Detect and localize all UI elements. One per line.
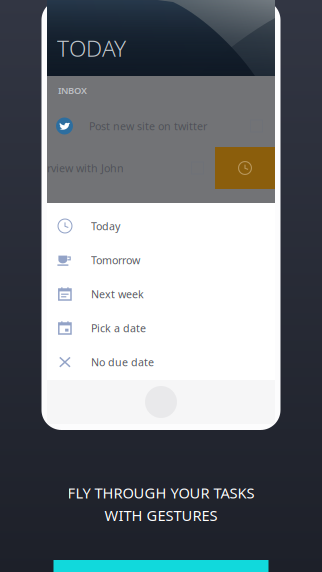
staticText: Next week bbox=[91, 287, 144, 301]
button[interactable]: Today bbox=[47, 209, 275, 243]
staticText: Pick a date bbox=[91, 321, 146, 335]
button[interactable]: Next week bbox=[47, 277, 275, 311]
staticText: TODAY bbox=[57, 33, 126, 63]
staticText: Tomorrow bbox=[91, 253, 140, 267]
button[interactable]: Snooze bbox=[215, 147, 275, 189]
staticText: WITH GESTURES bbox=[104, 505, 217, 525]
staticText: Post new site on twitter bbox=[89, 119, 207, 133]
staticText: No due date bbox=[91, 355, 154, 369]
staticText: FLY THROUGH YOUR TASKS bbox=[67, 483, 254, 502]
button[interactable]: Pick a date bbox=[47, 311, 275, 345]
button[interactable]: Post new site on twitter bbox=[47, 105, 275, 147]
staticText: INBOX bbox=[58, 84, 87, 97]
staticText: Today bbox=[91, 219, 120, 233]
staticText: rview with John bbox=[47, 161, 124, 175]
button[interactable]: No due date bbox=[47, 345, 275, 379]
button[interactable]: Tomorrow bbox=[47, 243, 275, 277]
